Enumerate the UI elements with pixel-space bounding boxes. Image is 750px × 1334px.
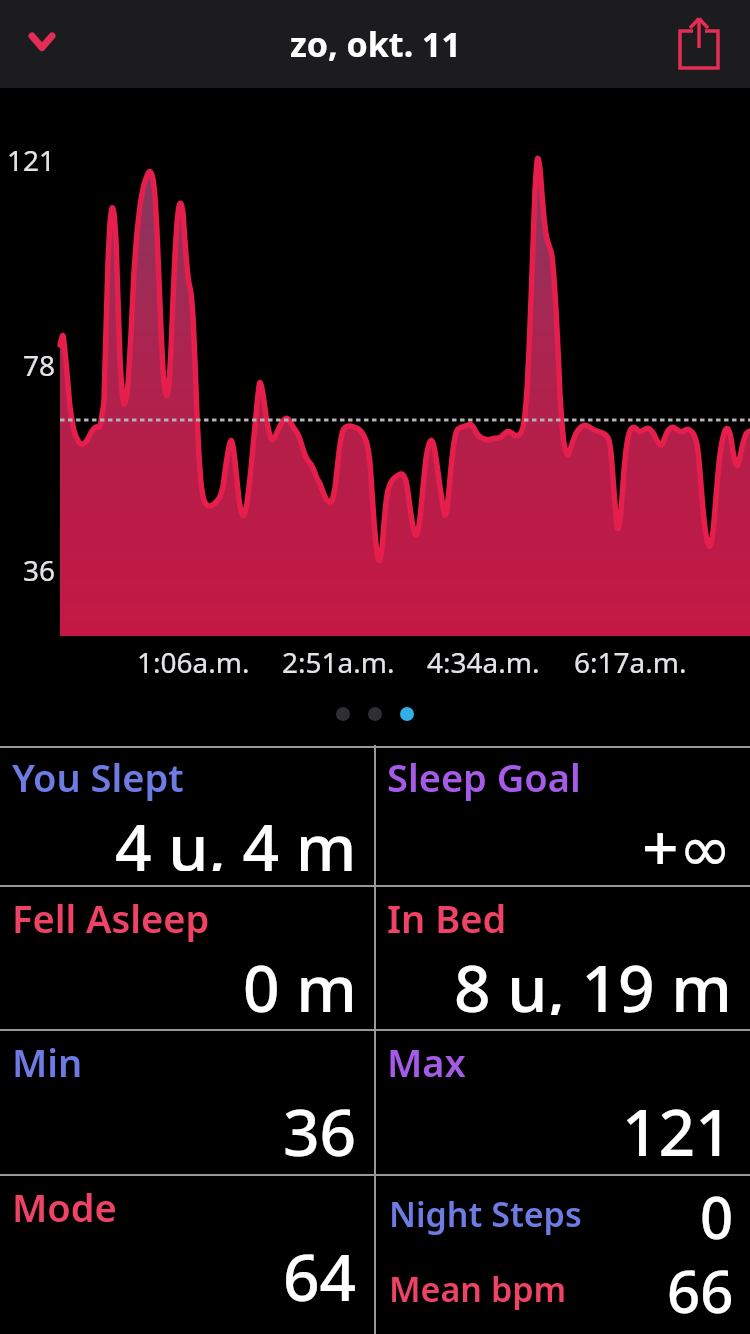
staticText: 0	[700, 1177, 734, 1251]
staticText: In Bed	[387, 892, 507, 944]
staticText: 0 m	[243, 944, 357, 1015]
button[interactable]: Sleep Goal	[375, 745, 750, 886]
staticText: Fell Asleep	[12, 892, 210, 944]
button[interactable]: Max	[375, 1030, 750, 1175]
button[interactable]	[676, 16, 724, 72]
staticText: Mode	[12, 1181, 117, 1233]
button[interactable]: You Slept	[0, 745, 375, 886]
button[interactable]	[368, 707, 382, 721]
staticText: 6:17a.m.	[574, 643, 687, 677]
button[interactable]	[336, 707, 350, 721]
staticText: 1:06a.m.	[137, 643, 250, 677]
staticText: 66	[667, 1251, 734, 1326]
staticText: 36	[283, 1088, 357, 1160]
staticText: 36	[23, 551, 56, 585]
staticText: Sleep Goal	[387, 751, 581, 803]
staticText: 8 u, 19 m	[454, 944, 732, 1015]
staticText: Night Steps	[389, 1191, 582, 1237]
staticText: You Slept	[12, 751, 184, 803]
staticText: +∞	[642, 803, 732, 871]
staticText: 121	[622, 1088, 732, 1160]
staticText: 2:51a.m.	[282, 643, 395, 677]
button[interactable]	[18, 20, 66, 68]
button[interactable]: In Bed	[375, 886, 750, 1030]
staticText: 121	[7, 141, 56, 175]
staticText: zo, okt. 11	[290, 21, 461, 67]
staticText: 78	[23, 346, 56, 380]
staticText: 4:34a.m.	[427, 643, 540, 677]
button[interactable]: Fell Asleep	[0, 886, 375, 1030]
staticText: 4 u, 4 m	[115, 803, 357, 871]
button[interactable]	[400, 707, 414, 721]
staticText: Max	[387, 1036, 466, 1088]
staticText: Mean bpm	[389, 1266, 567, 1312]
button[interactable]: Min	[0, 1030, 375, 1175]
staticText: Min	[12, 1036, 83, 1088]
staticText: 64	[283, 1233, 357, 1319]
button[interactable]: Night Steps	[375, 1175, 750, 1334]
button[interactable]: Mode	[0, 1175, 375, 1334]
